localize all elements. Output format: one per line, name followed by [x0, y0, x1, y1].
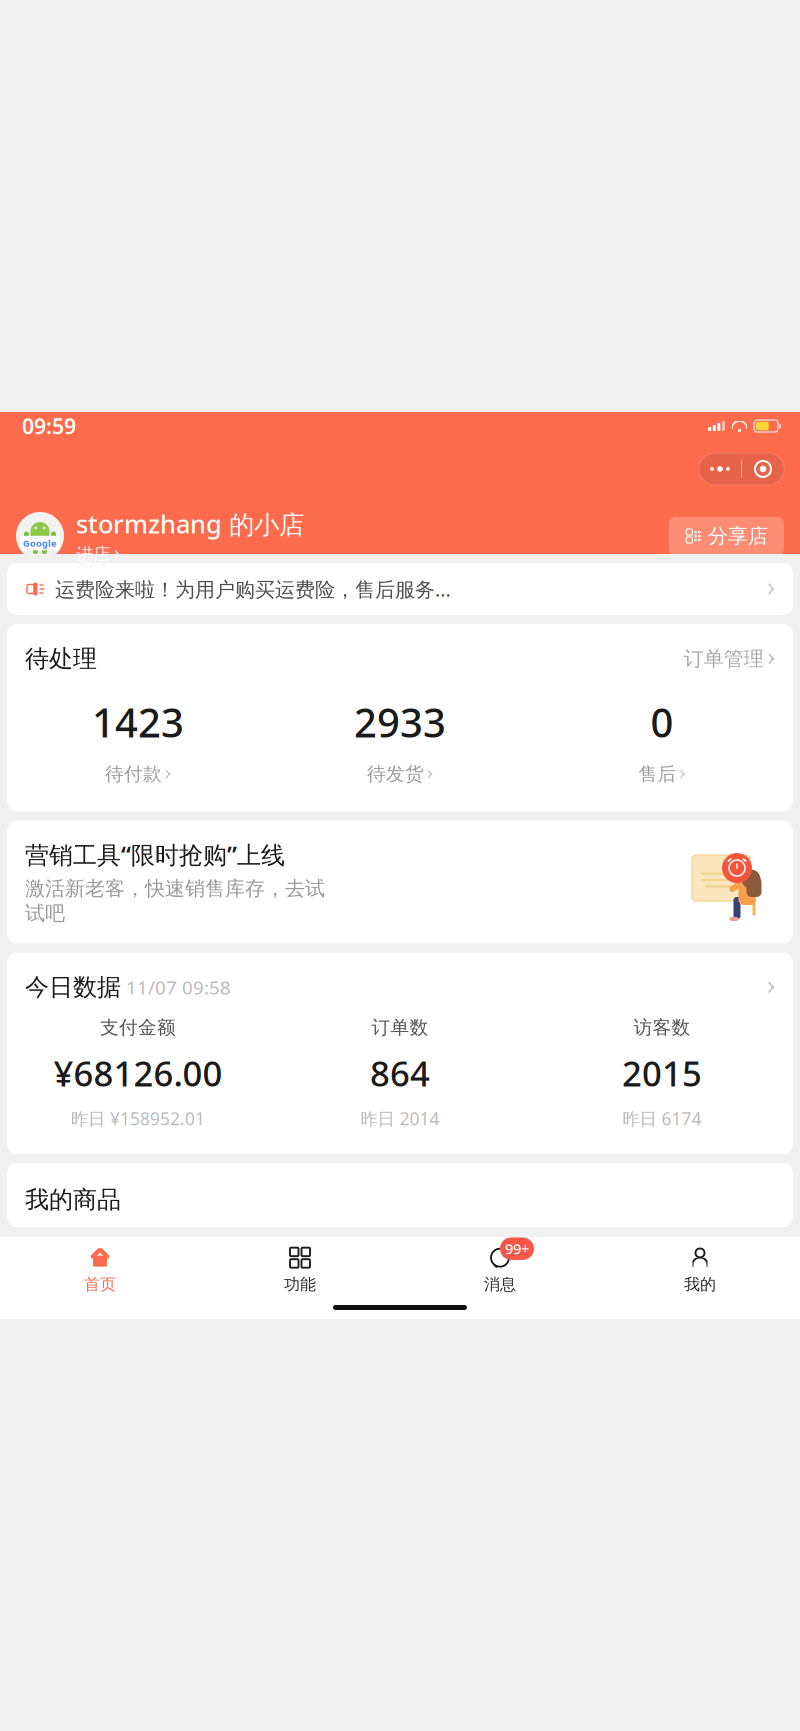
button[interactable]: More — [699, 453, 741, 485]
staticText: 待处理 — [25, 644, 97, 673]
staticText: 昨日 ¥158952.01 — [71, 1107, 205, 1130]
staticText: 09:59 — [22, 412, 76, 440]
staticText: 消息 — [484, 1275, 516, 1294]
staticText: 分享店 — [708, 524, 768, 548]
staticText: 功能 — [284, 1275, 316, 1294]
button[interactable]: 99+ — [400, 1238, 600, 1294]
button[interactable]: 0 — [531, 695, 793, 785]
button[interactable]: 功能 — [200, 1238, 400, 1294]
staticText: 11/07 09:58 — [121, 975, 231, 1000]
button[interactable]: 我的 — [600, 1238, 800, 1294]
staticText: 2015 — [622, 1050, 702, 1096]
staticText: 我的 — [684, 1275, 716, 1294]
staticText: 进店 — [76, 544, 110, 565]
button[interactable]: 首页 — [0, 1238, 200, 1294]
staticText: 昨日 6174 — [622, 1107, 701, 1130]
staticText: 首页 — [84, 1275, 116, 1294]
staticText: 昨日 2014 — [360, 1107, 439, 1130]
staticText: 2933 — [354, 695, 446, 749]
staticText: stormzhang 的小店 — [76, 507, 304, 541]
button[interactable]: Google — [16, 507, 304, 565]
button[interactable]: Close — [742, 453, 784, 485]
staticText: 99+ — [505, 1239, 529, 1258]
staticText: 今日数据 — [25, 972, 121, 1002]
button[interactable]: 订单管理 — [684, 646, 775, 671]
staticText: ¥68126.00 — [53, 1050, 222, 1096]
staticText: 864 — [370, 1050, 430, 1096]
staticText: 激活新老客，快速销售库存，去试 试吧 — [25, 876, 325, 925]
staticText: 访客数 — [633, 1016, 690, 1039]
staticText: 0 — [650, 695, 673, 749]
staticText: 待发货 — [367, 763, 424, 785]
staticText: 运费险来啦！为用户购买运费险，售后服务… — [55, 576, 451, 602]
staticText: 支付金额 — [100, 1016, 176, 1039]
staticText: 营销工具“限时抢购”上线 — [25, 838, 285, 870]
staticText: 待付款 — [105, 763, 162, 785]
staticText: 订单管理 — [684, 646, 764, 671]
staticText: 我的商品 — [25, 1185, 121, 1214]
button[interactable]: 运费险来啦！为用户购买运费险，售后服务… — [7, 563, 793, 615]
button[interactable]: 1423 — [7, 695, 269, 785]
staticText: Google — [23, 537, 57, 549]
button[interactable]: 营销工具“限时抢购”上线 — [7, 820, 793, 943]
button[interactable]: 2933 — [269, 695, 531, 785]
staticText: 售后 — [638, 763, 676, 785]
staticText: 1423 — [92, 695, 184, 749]
button[interactable]: 分享店 — [669, 517, 784, 555]
button[interactable]: 今日数据 — [7, 952, 793, 1002]
staticText: 订单数 — [371, 1016, 428, 1039]
